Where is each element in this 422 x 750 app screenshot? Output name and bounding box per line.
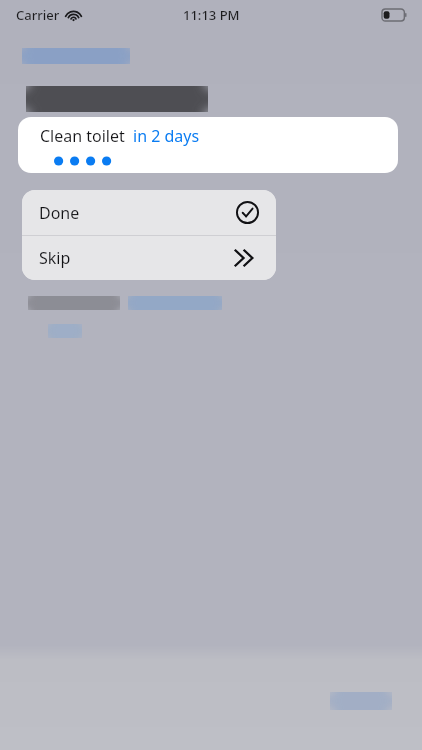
staticText: 11:13 PM — [183, 6, 240, 24]
staticText: Carrier — [16, 6, 60, 24]
staticText: Clean toilet — [40, 125, 125, 147]
button[interactable]: Done — [22, 190, 276, 235]
button[interactable]: Skip — [22, 236, 276, 280]
staticText: Done — [39, 202, 80, 224]
staticText: in 2 days — [133, 125, 200, 147]
button[interactable]: Clean toilet — [18, 117, 398, 173]
other: Done — [236, 201, 259, 224]
other: Skip — [233, 247, 259, 269]
staticText: Skip — [39, 247, 71, 269]
